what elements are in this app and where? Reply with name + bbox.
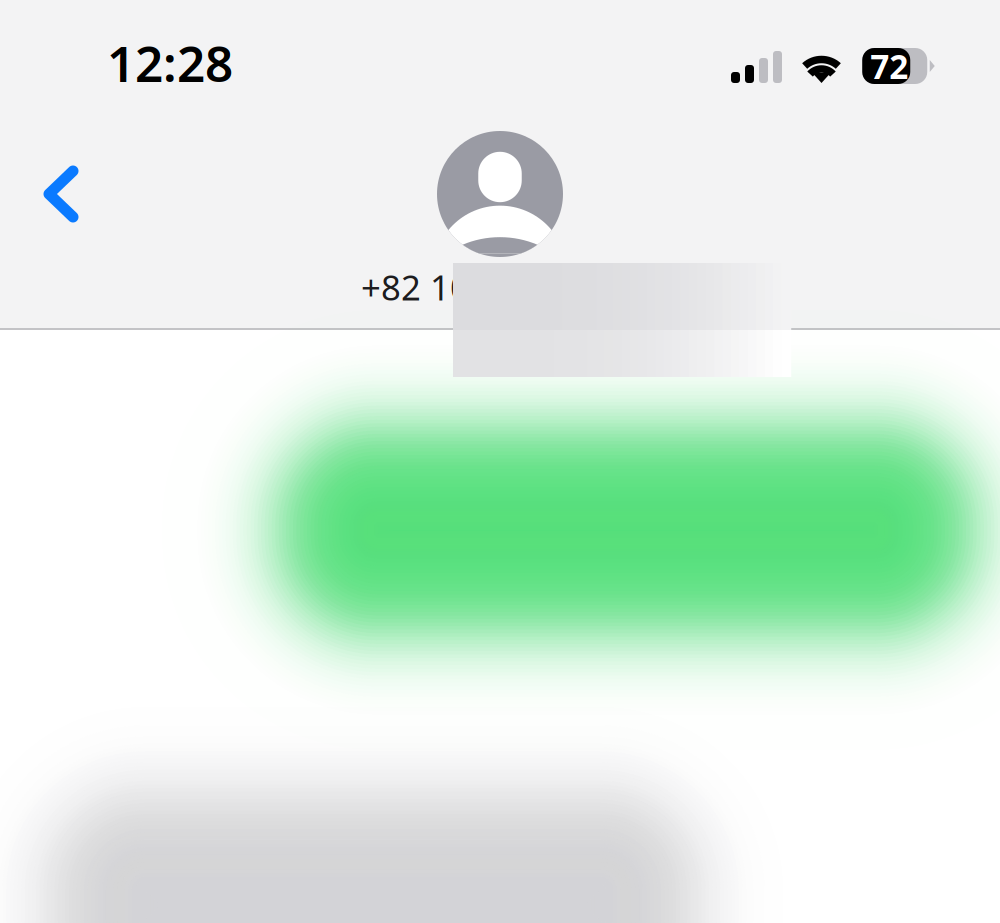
- staticText: 12:28: [107, 30, 233, 95]
- button[interactable]: Back: [36, 163, 132, 225]
- staticText: 72: [870, 44, 908, 88]
- staticText: +82 10-: [361, 264, 481, 310]
